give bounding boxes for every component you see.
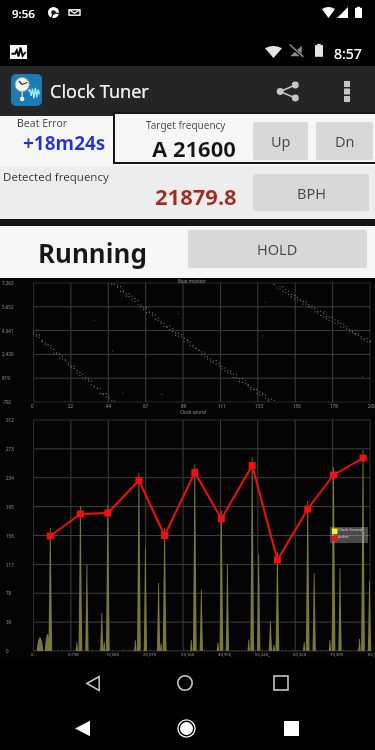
staticText: 0: (31, 652, 35, 658)
staticText: HOLD (257, 239, 298, 259)
staticText: 9:56 (12, 6, 35, 22)
button[interactable]: Dn (316, 122, 373, 160)
staticText: +18m24s (23, 130, 106, 156)
staticText: 200 (368, 403, 375, 409)
staticText: 44 (106, 403, 112, 409)
button[interactable]: Recents (269, 706, 313, 750)
staticText: 10,680 (106, 652, 120, 658)
staticText: 133 (255, 403, 263, 409)
staticText: Beat Error (17, 116, 68, 130)
staticText: Clock Sound (338, 527, 363, 533)
staticText: 29,160 (181, 652, 195, 658)
button[interactable]: Home (164, 706, 208, 750)
staticText: 67 (143, 403, 149, 409)
button[interactable]: Target frequency (115, 114, 253, 162)
staticText: 312 (6, 417, 14, 423)
button[interactable]: Home (163, 661, 207, 705)
staticText: 234 (6, 475, 14, 481)
button[interactable]: Up (253, 122, 308, 160)
staticText: 156 (293, 403, 301, 409)
staticText: 21879.8 (155, 181, 237, 211)
staticText: 8:57 (334, 44, 362, 63)
staticText: Dn (335, 131, 355, 151)
staticText: 89 (181, 403, 187, 409)
staticText: Up (271, 131, 291, 151)
button[interactable]: Back (60, 706, 104, 750)
staticText: Clock sound (180, 409, 206, 415)
staticText: 40,950, (218, 652, 233, 658)
staticText: 111 (218, 403, 226, 409)
staticText: 39 (6, 619, 12, 625)
staticText: 156 (6, 533, 14, 539)
staticText: 20,070 (143, 652, 157, 658)
staticText: 60,320 (293, 652, 307, 658)
staticText: 78 (6, 590, 12, 596)
staticText: 70,009 (330, 652, 344, 658)
button[interactable]: Recents (259, 661, 303, 705)
staticText: 0 (31, 403, 34, 409)
staticText: A 21600 (152, 133, 236, 163)
staticText: 50,240,; (255, 652, 271, 658)
staticText: pulse (338, 534, 349, 540)
staticText: 7,263 (2, 280, 14, 286)
staticText: 0 (6, 648, 9, 654)
staticText: Detected frequency (3, 169, 109, 185)
staticText: 22 (68, 403, 74, 409)
staticText: Target frequency (146, 118, 226, 132)
staticText: 80,980 (368, 652, 375, 658)
button[interactable]: Running (0, 226, 188, 278)
button[interactable]: Beat Error (0, 116, 113, 164)
staticText: Beat monitor (178, 278, 206, 284)
button[interactable]: BPH (253, 174, 369, 211)
staticText: -792 (2, 399, 12, 405)
staticText: Clock Tuner (50, 79, 149, 104)
button[interactable]: HOLD (188, 230, 367, 268)
staticText: Running (38, 235, 147, 270)
staticText: 0:798 (68, 652, 79, 658)
staticText: 273 (6, 446, 14, 452)
staticText: 117 (6, 562, 14, 568)
staticText: 5,652 (2, 304, 14, 310)
staticText: 4,041 (2, 328, 14, 334)
staticText: 195 (6, 504, 14, 510)
staticText: 2,430 (2, 351, 14, 357)
staticText: BPH (297, 183, 326, 203)
staticText: 178 (330, 403, 338, 409)
button[interactable]: Back (71, 661, 115, 705)
button[interactable]: Share (265, 66, 309, 116)
staticText: 819 (2, 375, 10, 381)
button[interactable]: More options (325, 66, 369, 116)
